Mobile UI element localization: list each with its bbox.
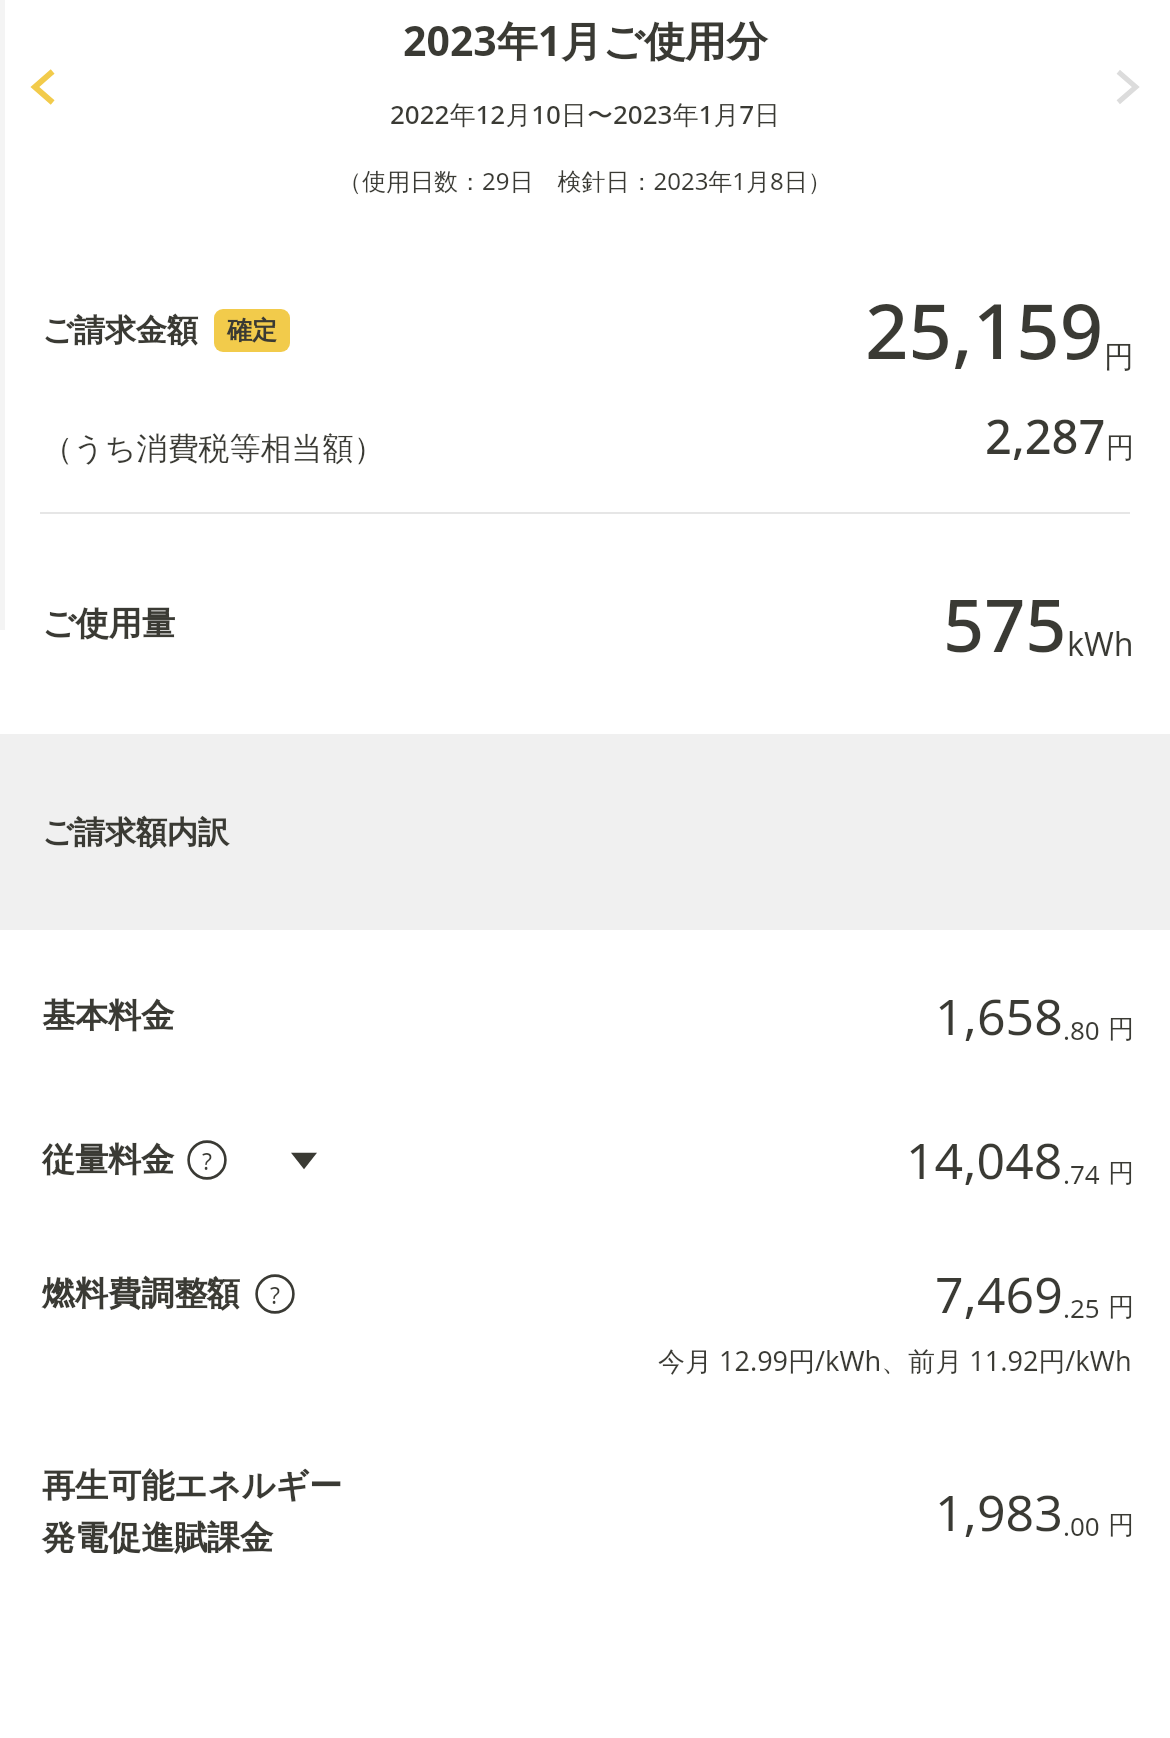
staticText: .74 (1063, 1156, 1100, 1191)
button[interactable]: 従量料金 (42, 1139, 228, 1181)
staticText: ? (270, 1279, 280, 1310)
staticText: .00 (1063, 1508, 1100, 1543)
staticText: ? (202, 1145, 212, 1176)
button[interactable]: 次の月 (1084, 44, 1170, 130)
other: 説明 (186, 1139, 228, 1181)
staticText: 2,287 (985, 404, 1106, 468)
other: 説明 (254, 1273, 296, 1315)
staticText: 575 (943, 575, 1067, 673)
staticText: 1,658 (935, 982, 1063, 1050)
staticText: ご請求金額 (42, 311, 198, 350)
staticText: 基本料金 (42, 995, 174, 1037)
staticText: .80 (1063, 1012, 1100, 1047)
staticText: 円 (1108, 1509, 1134, 1542)
staticText: 従量料金 (42, 1139, 174, 1181)
button[interactable]: 確定 (214, 309, 290, 352)
staticText: 燃料費調整額 (42, 1273, 240, 1315)
staticText: （うち消費税等相当額） (42, 429, 385, 468)
staticText: 確定 (227, 315, 277, 346)
staticText: ご使用量 (42, 603, 175, 645)
staticText: 円 (1106, 430, 1134, 465)
staticText: .25 (1063, 1290, 1100, 1325)
staticText: 再生可能エネルギー (42, 1465, 343, 1507)
button[interactable]: 展開 (282, 1138, 326, 1182)
staticText: 2022年12月10日〜2023年1月7日 (390, 96, 781, 132)
staticText: 25,159 (865, 278, 1104, 382)
button[interactable]: 燃料費調整額 (42, 1273, 296, 1315)
staticText: 円 (1108, 1291, 1134, 1324)
staticText: 1,983 (935, 1478, 1063, 1546)
staticText: ご請求額内訳 (42, 813, 229, 852)
staticText: 円 (1104, 338, 1134, 376)
staticText: 今月 12.99円/kWh、前月 11.92円/kWh (658, 1342, 1132, 1379)
button[interactable]: 基本料金 (42, 982, 1134, 1050)
staticText: kWh (1067, 622, 1134, 666)
staticText: 発電促進賦課金 (42, 1517, 273, 1559)
staticText: 7,469 (935, 1260, 1063, 1328)
button[interactable]: 前の月 (0, 44, 86, 130)
staticText: （使用日数：29日 検針日：2023年1月8日） (338, 164, 832, 197)
staticText: 14,048 (906, 1126, 1063, 1194)
staticText: 2023年1月ご使用分 (403, 12, 768, 68)
staticText: 円 (1108, 1157, 1134, 1190)
staticText: 円 (1108, 1013, 1134, 1046)
